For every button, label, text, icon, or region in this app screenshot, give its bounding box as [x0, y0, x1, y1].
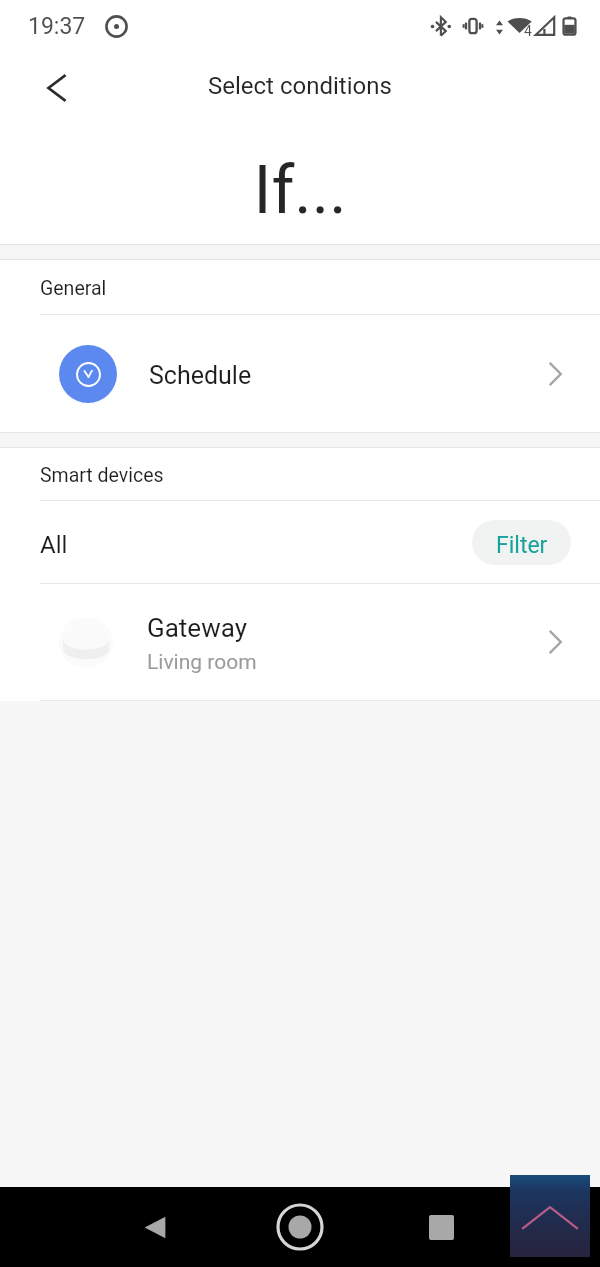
staticText: Gateway — [147, 613, 247, 643]
button[interactable]: Gesture overlay — [510, 1175, 590, 1257]
button[interactable]: Home — [275, 1202, 325, 1252]
staticText: 19:37 — [28, 13, 86, 40]
staticText: Schedule — [149, 361, 252, 390]
staticText: Living room — [147, 650, 257, 675]
button[interactable]: Filter — [472, 520, 571, 565]
button[interactable]: Schedule — [0, 315, 600, 432]
staticText: General — [40, 277, 107, 300]
button[interactable]: Back — [130, 1202, 180, 1252]
staticText: Smart devices — [40, 464, 164, 487]
staticText: 4 — [524, 23, 532, 39]
button[interactable]: Gateway — [0, 584, 600, 700]
staticText: If... — [253, 152, 347, 229]
staticText: Filter — [496, 532, 548, 559]
button[interactable]: Recents — [416, 1202, 466, 1252]
staticText: Select conditions — [208, 72, 392, 100]
button[interactable]: Back — [33, 64, 81, 112]
staticText: All — [40, 531, 68, 559]
